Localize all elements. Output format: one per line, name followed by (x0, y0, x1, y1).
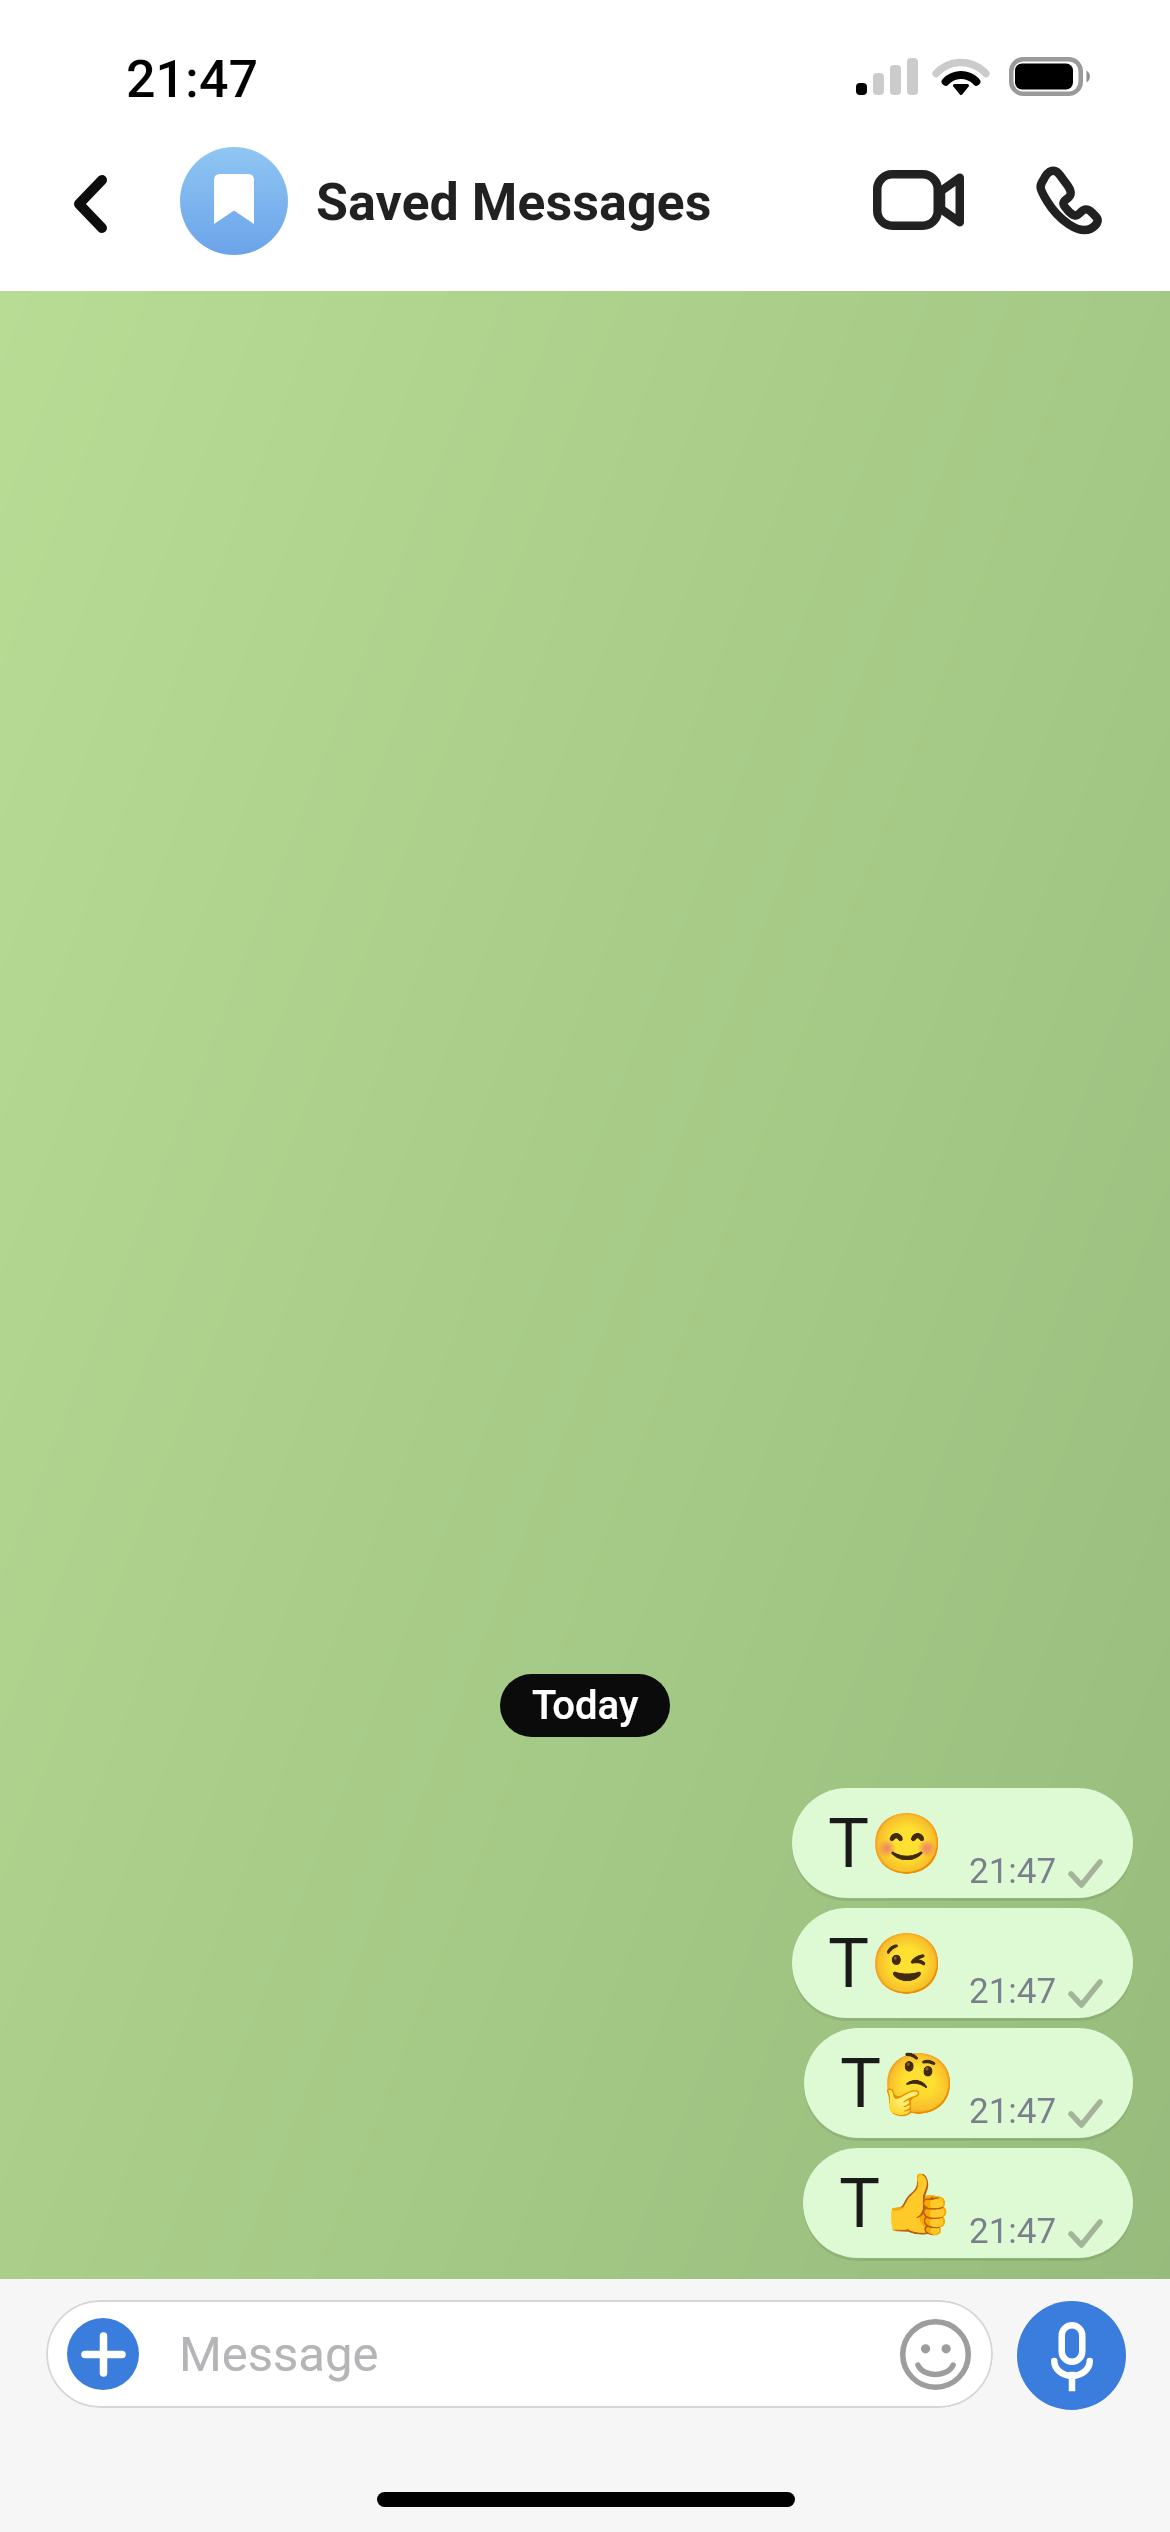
button[interactable]: Video call (864, 146, 972, 254)
staticText: T (828, 1923, 870, 2004)
button[interactable]: T (803, 2148, 1133, 2258)
staticText: 😉 (870, 1929, 938, 1998)
button[interactable]: Today (500, 1674, 670, 1737)
button[interactable]: Attach (67, 2318, 139, 2390)
staticText: T (828, 1803, 870, 1884)
button[interactable]: T (792, 1908, 1133, 2018)
staticText: 😊 (870, 1809, 938, 1878)
button[interactable]: Record voice message (1017, 2301, 1126, 2410)
staticText: 🤔 (882, 2049, 950, 2118)
staticText: 21:47 (969, 1971, 1057, 2012)
staticText: Message (179, 2326, 379, 2383)
button[interactable]: T (804, 2028, 1133, 2138)
staticText: 21:47 (126, 49, 259, 110)
staticText: 21:47 (969, 1851, 1057, 1892)
button[interactable]: T (792, 1788, 1133, 1898)
staticText: 21:47 (969, 2211, 1057, 2252)
staticText: 21:47 (969, 2091, 1057, 2132)
button[interactable]: Back (42, 150, 138, 258)
staticText: Today (532, 1682, 639, 1729)
button[interactable]: Emoji (892, 2311, 978, 2397)
button[interactable]: Call (1013, 144, 1121, 252)
staticText: Saved Messages (316, 172, 712, 233)
staticText: 👍 (881, 2169, 949, 2238)
button[interactable]: Saved Messages avatar (180, 147, 288, 255)
staticText: T (839, 2163, 881, 2244)
staticText: T (840, 2043, 882, 2124)
button[interactable]: Attach (46, 2300, 993, 2408)
